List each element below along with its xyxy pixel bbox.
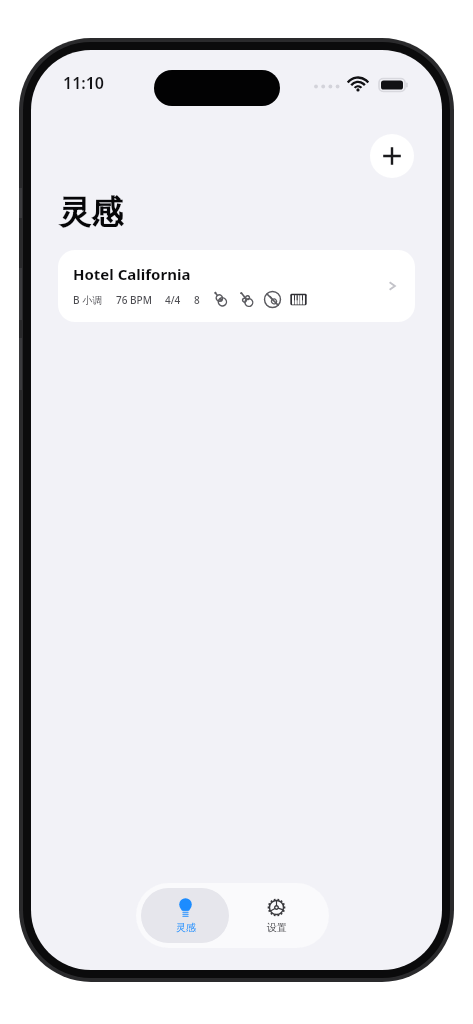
- staticText: 76 BPM: [116, 293, 152, 307]
- staticText: 灵感: [176, 921, 196, 934]
- button[interactable]: 灵感: [141, 888, 229, 943]
- button[interactable]: Add: [370, 134, 414, 178]
- staticText: 11:10: [63, 72, 105, 94]
- staticText: 4/4: [165, 293, 181, 307]
- staticText: 灵感: [59, 192, 123, 232]
- staticText: Hotel California: [73, 264, 191, 284]
- staticText: 8: [194, 293, 200, 307]
- button[interactable]: 设置: [229, 888, 324, 943]
- staticText: B 小调: [73, 293, 103, 307]
- staticText: 设置: [267, 921, 287, 934]
- button[interactable]: Hotel California: [58, 250, 415, 322]
